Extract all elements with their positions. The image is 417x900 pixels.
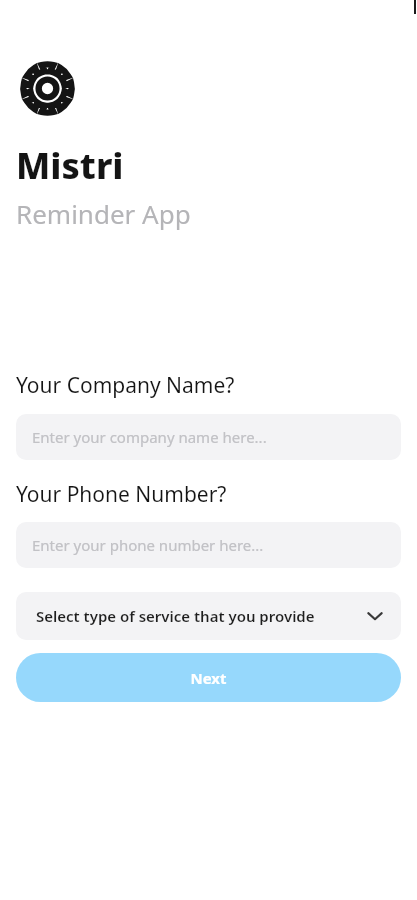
button[interactable]: Select type of service that you provide (16, 592, 401, 640)
other: App logo settings gear (17, 58, 78, 119)
staticText: Next (190, 668, 227, 688)
button[interactable]: Next (16, 653, 401, 702)
staticText: Mistri (16, 141, 124, 190)
staticText: Your Company Name? (16, 371, 235, 400)
button[interactable]: Enter your phone number here... (16, 522, 401, 568)
other: Expand service list (367, 608, 383, 624)
staticText: Your Phone Number? (16, 480, 227, 509)
staticText: Enter your phone number here... (32, 535, 264, 555)
staticText: Enter your company name here... (32, 427, 267, 447)
staticText: Reminder App (16, 196, 191, 231)
staticText: Select type of service that you provide (36, 606, 367, 626)
button[interactable]: Enter your company name here... (16, 414, 401, 460)
